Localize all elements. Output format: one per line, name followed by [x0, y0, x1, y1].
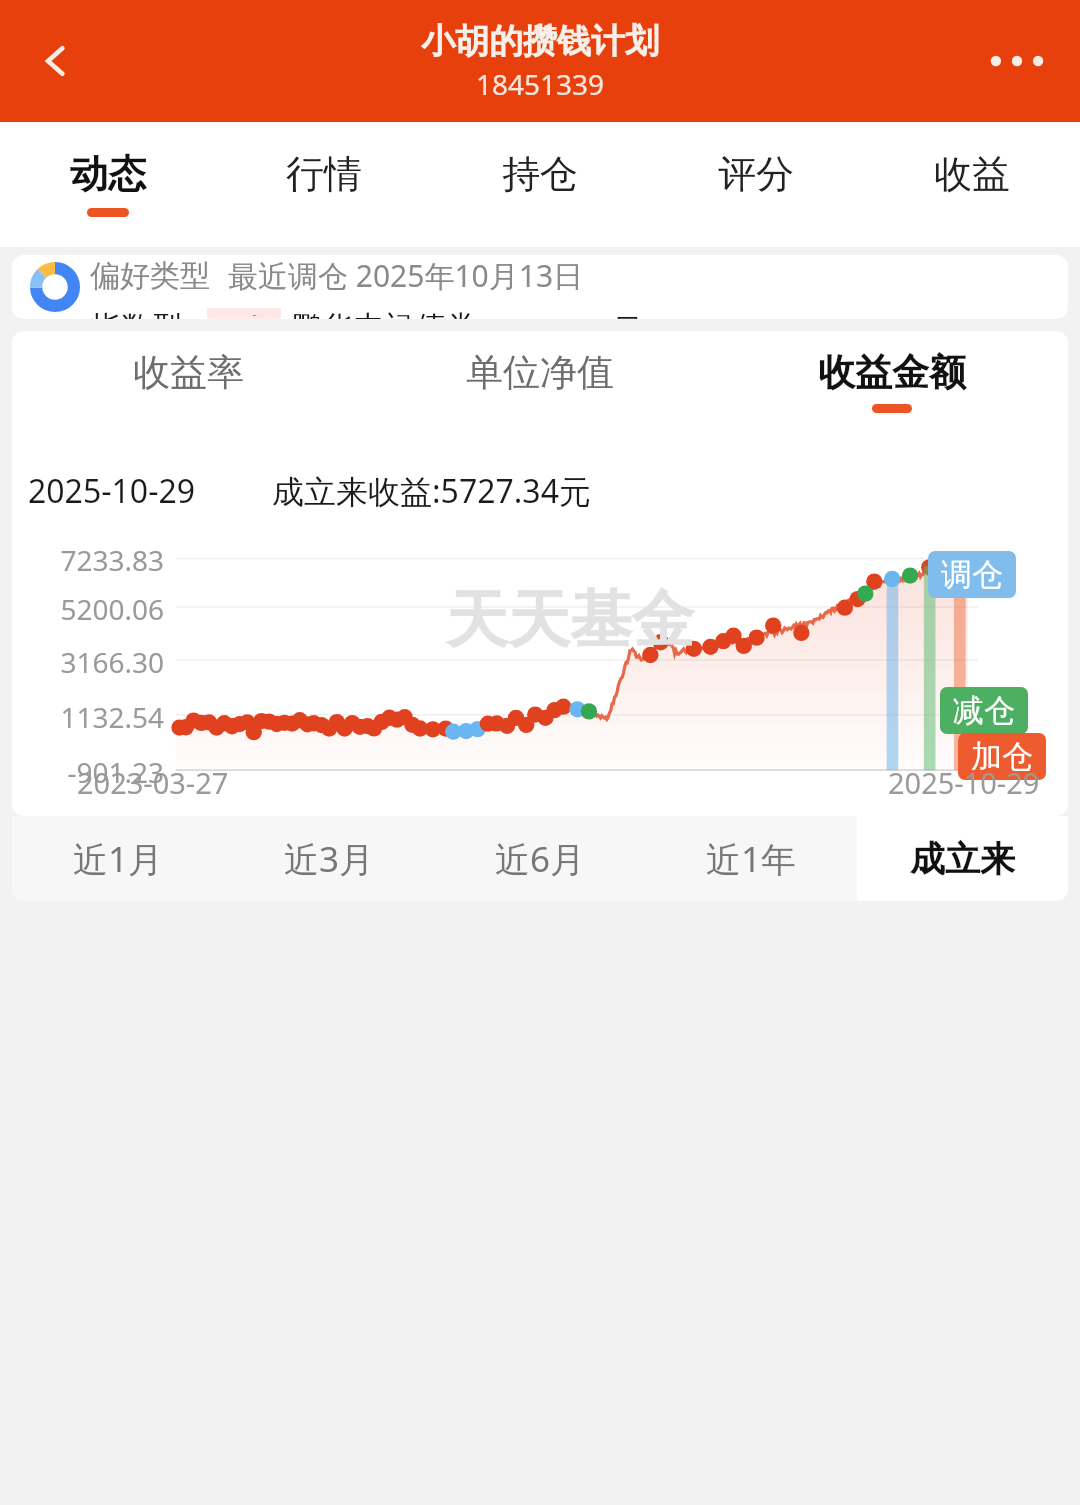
button[interactable]: 持仓 — [432, 122, 648, 247]
button[interactable]: 近1年 — [646, 816, 857, 901]
button[interactable]: 收益 — [864, 122, 1080, 247]
button[interactable]: 近1月 — [12, 816, 224, 901]
staticText: 近3月 — [284, 835, 375, 883]
staticText: 18451339 — [476, 65, 605, 103]
staticText: 单位净值 — [466, 349, 614, 396]
staticText: 小胡的攒钱计划 — [421, 20, 659, 63]
button[interactable]: 收益率 — [12, 331, 364, 431]
staticText: 7233.83 — [12, 541, 164, 579]
staticText: 成立来 — [910, 837, 1015, 881]
staticText: 2025-10-29 — [888, 763, 1040, 802]
staticText: 评分 — [718, 150, 794, 198]
staticText: 鹏华丰禄债券 — [291, 308, 477, 319]
staticText: 2025-10-29 — [28, 469, 196, 513]
button[interactable]: 近6月 — [435, 816, 646, 901]
button[interactable]: More options — [972, 25, 1062, 97]
staticText: 持仓 — [502, 150, 578, 198]
staticText: 收益率 — [133, 349, 244, 396]
staticText: 3166.30 — [12, 643, 164, 681]
staticText: 近1年 — [706, 835, 797, 883]
staticText: 100.00元 — [515, 308, 643, 319]
staticText: 指数型 — [90, 308, 183, 319]
button[interactable]: 成立来 — [857, 816, 1068, 901]
staticText: 成立来收益:5727.34元 — [272, 469, 591, 513]
staticText: -901.23 — [12, 753, 164, 791]
staticText: 1132.54 — [12, 698, 164, 736]
button[interactable]: 动态 — [0, 122, 216, 247]
staticText: 2023-03-27 — [77, 763, 229, 802]
staticText: 近6月 — [495, 835, 586, 883]
button[interactable]: 收益金额 — [716, 331, 1068, 431]
staticText: 减仓 — [953, 691, 1015, 730]
staticText: 行情 — [286, 150, 362, 198]
staticText: 加仓 — [971, 737, 1033, 776]
button[interactable]: 行情 — [216, 122, 432, 247]
staticText: 天天基金 — [446, 581, 694, 659]
button[interactable]: 偏好类型 — [12, 255, 1068, 319]
staticText: 买入 — [215, 311, 273, 316]
staticText: 收益 — [934, 150, 1010, 198]
button[interactable]: 近3月 — [224, 816, 435, 901]
staticText: 最近调仓 2025年10月13日 — [228, 255, 584, 296]
button[interactable]: 评分 — [648, 122, 864, 247]
staticText: 近1月 — [73, 835, 164, 883]
button[interactable]: Back — [20, 25, 92, 97]
staticText: 收益金额 — [818, 349, 966, 396]
staticText: 偏好类型 — [90, 257, 210, 295]
staticText: 调仓 — [941, 555, 1003, 594]
staticText: 5200.06 — [12, 590, 164, 628]
staticText: 动态 — [70, 150, 146, 198]
button[interactable]: 单位净值 — [364, 331, 716, 431]
